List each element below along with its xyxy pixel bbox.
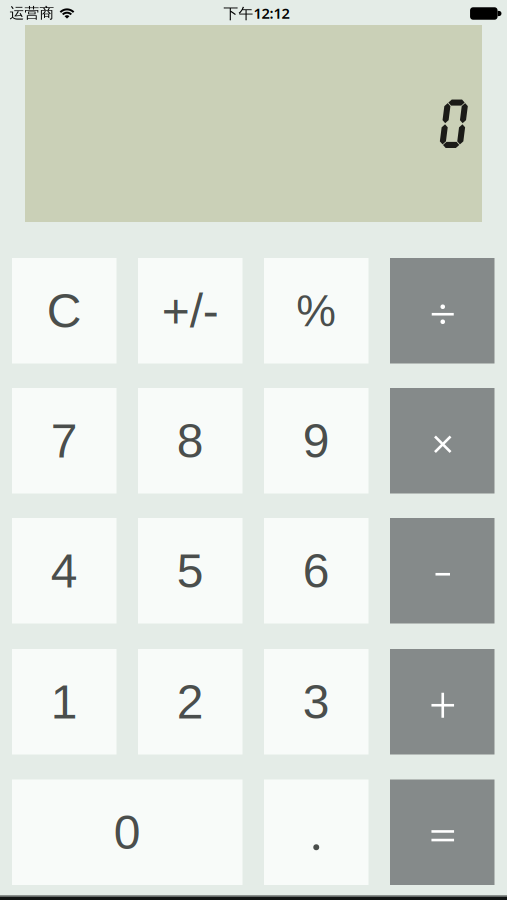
button[interactable]: +/- [138, 258, 242, 363]
button[interactable] [390, 258, 494, 363]
staticText: 2 [177, 675, 204, 728]
staticText: C [47, 284, 82, 337]
button[interactable]: 1 [12, 649, 116, 754]
button[interactable] [264, 779, 368, 885]
button[interactable] [390, 518, 494, 623]
button[interactable]: % [264, 258, 368, 363]
button[interactable]: 2 [138, 649, 242, 754]
staticText: 运营商 [9, 4, 54, 22]
staticText: 7 [51, 414, 78, 467]
staticText: 5 [177, 544, 204, 597]
staticText: 3 [303, 675, 330, 728]
button[interactable] [390, 779, 494, 885]
button[interactable] [390, 388, 494, 493]
button[interactable]: 4 [12, 518, 116, 623]
button[interactable]: 0 [12, 779, 242, 885]
staticText: 8 [177, 414, 204, 467]
button[interactable] [390, 649, 494, 754]
staticText: 下午12:12 [223, 3, 289, 23]
staticText: 1 [51, 675, 78, 728]
button[interactable]: 8 [138, 388, 242, 493]
button[interactable]: C [12, 258, 116, 363]
staticText: +/- [162, 284, 219, 337]
button[interactable]: 5 [138, 518, 242, 623]
staticText: % [296, 286, 336, 336]
button[interactable]: 3 [264, 649, 368, 754]
button[interactable]: 6 [264, 518, 368, 623]
button[interactable]: 9 [264, 388, 368, 493]
button[interactable]: 7 [12, 388, 116, 493]
staticText: 6 [303, 544, 330, 597]
staticText: 4 [51, 544, 78, 597]
staticText: 0 [114, 805, 141, 859]
staticText: 9 [303, 414, 330, 467]
